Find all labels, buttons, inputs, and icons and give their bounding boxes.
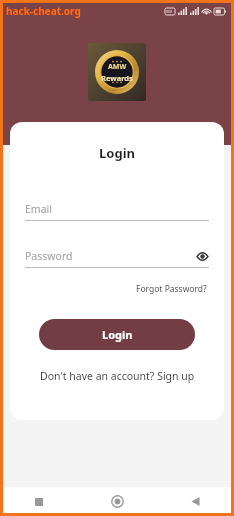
staticText: Login <box>10 144 224 162</box>
staticText: AMW <box>108 62 127 72</box>
button[interactable]: Show password <box>195 249 209 263</box>
staticText: Don't have an account? Sign up <box>40 369 195 383</box>
staticText: Password <box>25 249 195 263</box>
staticText: Login <box>102 327 133 342</box>
staticText: Email <box>25 202 209 216</box>
staticText: hack-cheat.org <box>5 4 80 18</box>
button[interactable]: Forgot Password? <box>134 281 209 297</box>
button[interactable]: Password <box>25 249 209 268</box>
button[interactable]: Back <box>156 487 234 516</box>
button[interactable]: Recent apps <box>0 487 78 516</box>
staticText: Forgot Password? <box>136 283 207 295</box>
staticText: hack-cheat.org <box>6 4 81 18</box>
button[interactable]: Login <box>39 319 195 350</box>
button[interactable]: Email <box>25 202 209 221</box>
button[interactable]: Don't have an account? Sign up <box>36 367 199 385</box>
staticText: Rewards <box>101 73 133 83</box>
button[interactable]: Home <box>78 487 156 516</box>
